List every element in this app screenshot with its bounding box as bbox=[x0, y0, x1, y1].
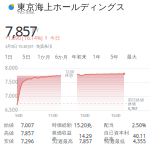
staticText: 11:00 bbox=[48, 112, 57, 118]
staticText: +1,090 (16.14%) ↑ 今日 bbox=[5, 34, 60, 41]
staticText: TYO: 8766 bbox=[17, 9, 34, 15]
staticText: 14.29 bbox=[79, 133, 92, 139]
staticText: 高値 bbox=[4, 130, 14, 136]
staticText: 9:00 bbox=[15, 112, 22, 118]
staticText: JPY bbox=[32, 27, 39, 34]
staticText: 15.20兆 bbox=[74, 122, 92, 128]
staticText: 安値 bbox=[4, 138, 14, 144]
button[interactable]: 6か月 bbox=[53, 53, 70, 61]
staticText: 6,500 bbox=[5, 107, 18, 113]
staticText: 7,000 bbox=[5, 93, 18, 99]
staticText: 最大 bbox=[127, 54, 137, 60]
staticText: 始値 bbox=[4, 122, 14, 128]
staticText: 自己資本利益率 bbox=[104, 130, 129, 142]
staticText: 7,857 bbox=[5, 21, 37, 41]
button[interactable]: 年初来 bbox=[70, 53, 88, 61]
staticText: 13:00 bbox=[80, 112, 89, 118]
button[interactable]: 1日 bbox=[0, 53, 18, 61]
staticText: 前日終値 bbox=[128, 97, 144, 102]
staticText: 7,857 bbox=[21, 130, 34, 136]
staticText: 終値 bbox=[128, 101, 136, 106]
staticText: 配当 bbox=[104, 122, 114, 128]
staticText: 7,007 bbox=[21, 122, 34, 128]
staticText: 東京海上ホールディングス bbox=[17, 1, 125, 13]
staticText: 12:00 bbox=[65, 69, 74, 74]
staticText: 1年 bbox=[93, 54, 101, 60]
staticText: 6,767 bbox=[128, 105, 137, 111]
staticText: 15:00 bbox=[111, 112, 120, 118]
staticText: 5年 bbox=[110, 54, 118, 60]
staticText: 休憩 bbox=[65, 73, 73, 78]
staticText: 1か月 bbox=[37, 54, 50, 60]
button[interactable]: 1か月 bbox=[35, 53, 53, 61]
staticText: 7,857 bbox=[79, 138, 92, 144]
staticText: 3月9日 15:30 JST · 免責条項 bbox=[5, 43, 52, 49]
staticText: 52週最高 bbox=[52, 138, 73, 144]
button[interactable]: 5日 bbox=[18, 53, 35, 61]
staticText: 7,296 bbox=[21, 138, 34, 144]
staticText: 4,355 bbox=[133, 138, 146, 144]
staticText: 2.50% bbox=[132, 122, 146, 128]
button[interactable]: 最大 bbox=[123, 53, 141, 61]
staticText: 40.11 bbox=[133, 133, 146, 139]
button[interactable]: 1年 bbox=[88, 53, 106, 61]
staticText: 8,000 bbox=[5, 65, 18, 71]
staticText: 株価収益率 bbox=[52, 130, 72, 142]
staticText: 年初来 bbox=[72, 54, 87, 60]
staticText: 7,500 bbox=[5, 79, 18, 85]
staticText: 1日 bbox=[5, 54, 13, 60]
staticText: 6か月 bbox=[55, 54, 68, 60]
staticText: 5日 bbox=[22, 54, 30, 60]
button[interactable]: 5年 bbox=[106, 53, 123, 61]
staticText: 52週最低 bbox=[104, 138, 125, 144]
staticText: 時価総額 bbox=[52, 122, 72, 128]
